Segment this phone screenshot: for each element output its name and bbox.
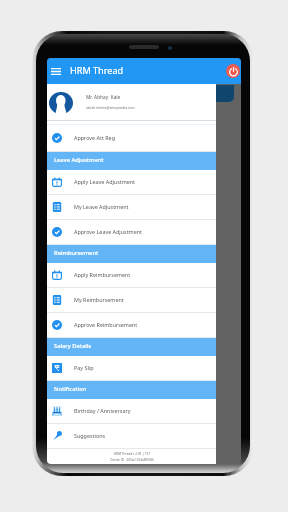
button[interactable]: Mr. Abhay Kale <box>47 84 216 120</box>
button[interactable]: My Reimbursement <box>47 288 216 312</box>
staticText: Salary Details <box>54 342 92 350</box>
button[interactable]: My Leave Adjustment <box>47 195 216 219</box>
button[interactable]: Apply Leave Adjustment <box>47 170 216 194</box>
button[interactable]: Apply Reimbursement <box>47 263 216 287</box>
button[interactable]: Approve Leave Adjustment <box>47 220 216 244</box>
staticText: Approve Leave Adjustment <box>74 228 142 235</box>
staticText: Mr. Abhay Kale <box>86 94 121 101</box>
staticText: Device ID : 205ac1254a8f5986 <box>110 458 154 462</box>
staticText: Apply Leave Adjustment <box>74 178 136 185</box>
staticText: Pay Slip <box>74 364 94 371</box>
staticText: Approve Att Reg <box>74 134 115 141</box>
staticText: My Reimbursement <box>74 296 124 303</box>
button[interactable]: Approve Reimbursement <box>47 313 216 337</box>
staticText: Apply Reimbursement <box>74 271 131 278</box>
button[interactable]: Suggestions <box>47 424 216 448</box>
staticText: Suggestions <box>74 432 106 439</box>
staticText: HRM Thread v 2.95 | 157 <box>114 452 150 456</box>
staticText: Leave Adjustment <box>54 156 104 164</box>
staticText: HRM Thread <box>70 64 124 76</box>
button[interactable]: Approve Att Reg <box>47 125 216 151</box>
staticText: Notification <box>54 385 87 393</box>
staticText: satish.mishra@sereysindia.com <box>86 105 135 109</box>
button[interactable]: Open navigation menu <box>48 63 64 79</box>
staticText: Reimbursement <box>54 249 99 257</box>
button[interactable]: Birthday / Anniversary <box>47 399 216 423</box>
staticText: Approve Reimbursement <box>74 321 138 328</box>
staticText: My Leave Adjustment <box>74 203 129 210</box>
button[interactable]: Pay Slip <box>47 356 216 380</box>
button[interactable]: Logout <box>226 64 240 78</box>
staticText: Birthday / Anniversary <box>74 407 131 414</box>
